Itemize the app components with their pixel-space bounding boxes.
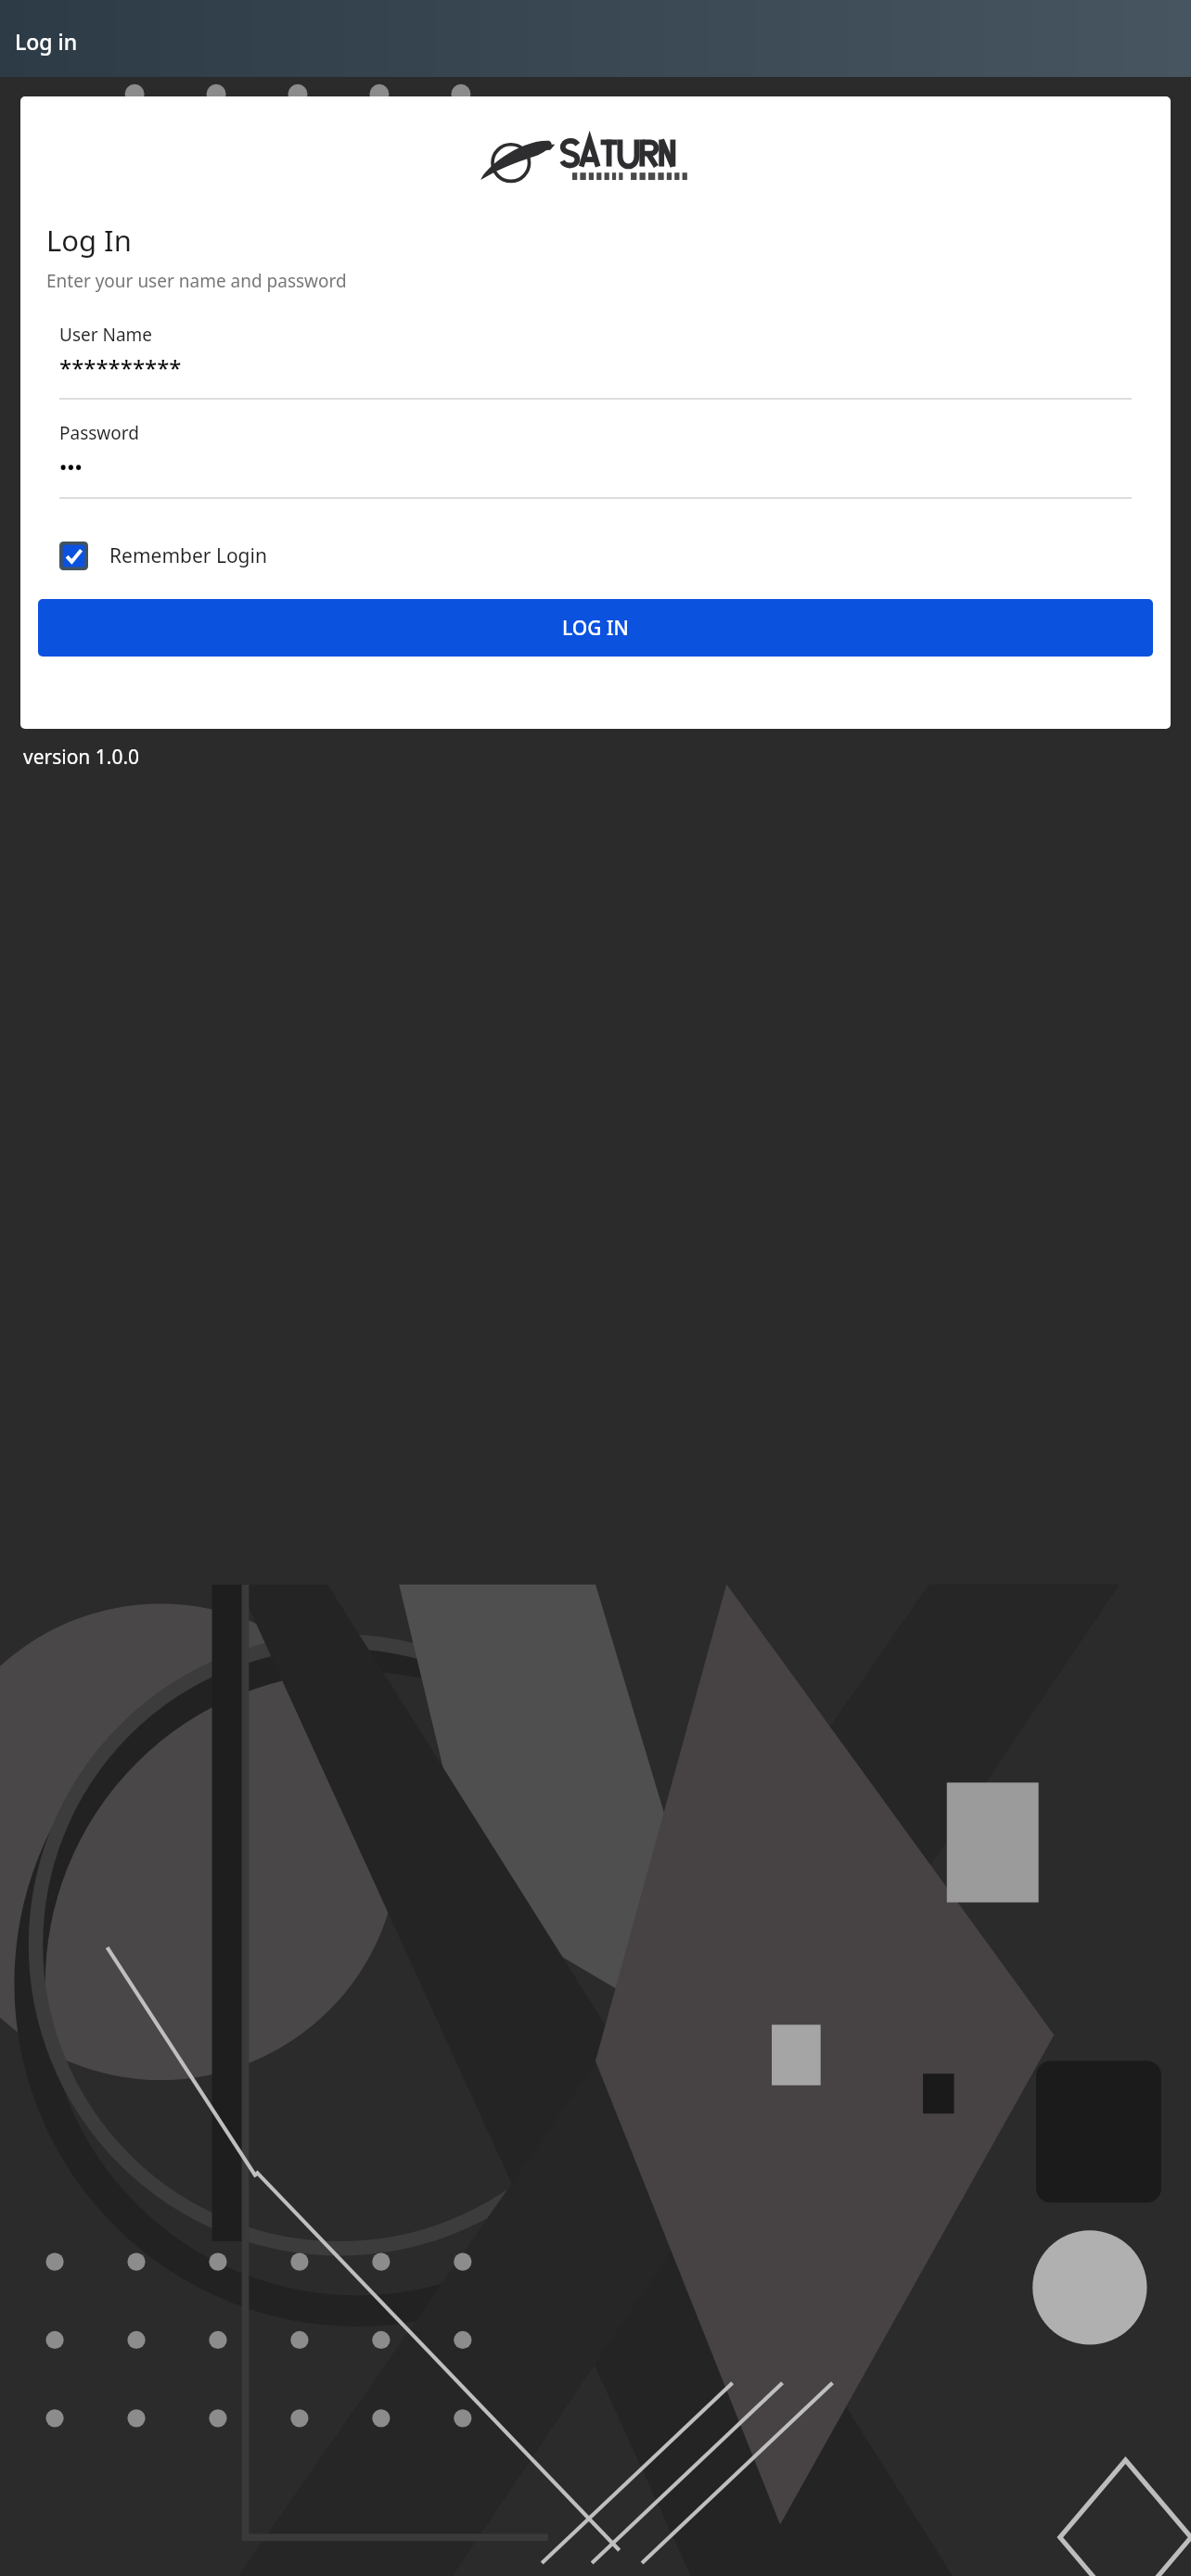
staticText: version 1.0.0: [23, 744, 140, 771]
staticText: Password: [59, 421, 139, 445]
button[interactable]: Password: [59, 421, 1132, 499]
staticText: LOG IN: [562, 615, 629, 642]
button[interactable]: Remember Login: [59, 542, 267, 570]
staticText: Log in: [15, 27, 78, 56]
staticText: Enter your user name and password: [46, 269, 347, 293]
staticText: Remember Login: [109, 542, 267, 569]
button[interactable]: LOG IN: [38, 599, 1153, 657]
staticText: User Name: [59, 323, 153, 347]
staticText: Log In: [46, 221, 132, 260]
button[interactable]: User Name: [59, 323, 1132, 400]
staticText: •••: [59, 453, 83, 480]
staticText: **********: [59, 352, 182, 383]
